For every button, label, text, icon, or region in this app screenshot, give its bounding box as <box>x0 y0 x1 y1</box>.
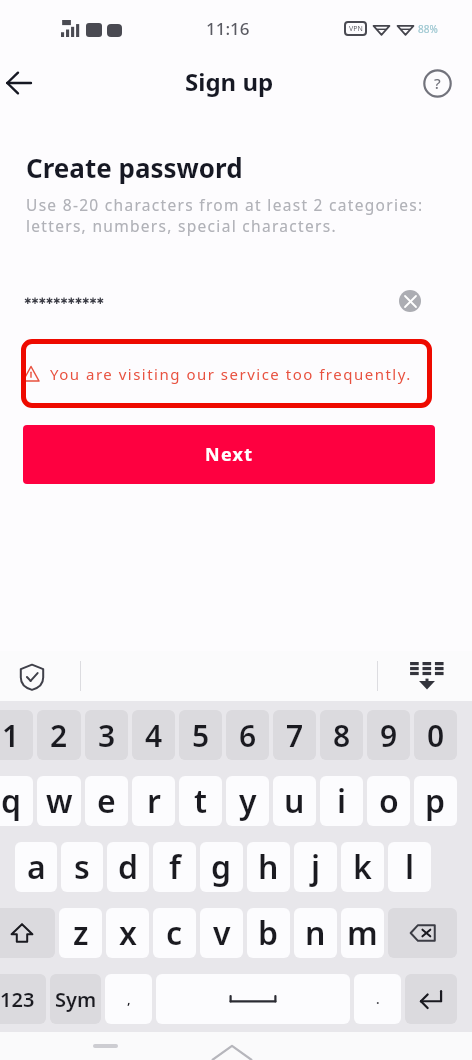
button[interactable]: Sym <box>50 974 101 1024</box>
staticText: o <box>379 779 399 823</box>
staticText: , <box>127 990 131 1008</box>
staticText: v <box>213 911 231 955</box>
staticText: y <box>239 779 257 823</box>
staticText: ✱✱✱✱✱✱✱✱✱✱✱ <box>24 296 399 306</box>
staticText: w <box>46 779 73 823</box>
staticText: VPN <box>349 24 363 34</box>
button[interactable]: p <box>414 776 457 826</box>
button[interactable]: 123 <box>0 974 46 1024</box>
button[interactable]: t <box>179 776 222 826</box>
staticText: Sign up <box>185 65 274 98</box>
button[interactable]: e <box>85 776 128 826</box>
button[interactable]: 1 <box>0 710 33 760</box>
staticText: p <box>425 779 446 823</box>
staticText: 8 <box>333 715 351 756</box>
button[interactable]: Hide keyboard <box>408 656 446 694</box>
button[interactable]: v <box>200 908 243 958</box>
button[interactable]: Backspace <box>388 908 457 958</box>
staticText: . <box>376 990 380 1008</box>
button[interactable]: q <box>0 776 33 826</box>
button[interactable]: Shift <box>0 908 55 958</box>
button[interactable]: m <box>341 908 384 958</box>
staticText: 2 <box>50 715 68 756</box>
button[interactable]: 8 <box>320 710 363 760</box>
button[interactable]: Space <box>156 974 350 1024</box>
staticText: Next <box>205 442 254 467</box>
staticText: z <box>73 911 89 955</box>
button[interactable]: c <box>153 908 196 958</box>
button[interactable]: j <box>294 842 337 892</box>
staticText: i <box>337 779 347 823</box>
button[interactable]: l <box>388 842 431 892</box>
staticText: 88% <box>418 22 438 36</box>
staticText: Create password <box>26 150 243 185</box>
button[interactable]: Help <box>415 61 459 105</box>
staticText: s <box>74 845 90 889</box>
staticText: f <box>169 845 181 889</box>
button[interactable]: Enter <box>405 974 457 1024</box>
staticText: t <box>194 779 207 823</box>
button[interactable]: . <box>354 974 401 1024</box>
button[interactable]: g <box>200 842 243 892</box>
button[interactable]: , <box>105 974 152 1024</box>
staticText: g <box>211 845 232 889</box>
button[interactable]: Back <box>0 61 41 105</box>
staticText: Use 8-20 characters from at least 2 cate… <box>26 194 424 237</box>
staticText: q <box>1 779 22 823</box>
staticText: n <box>305 911 326 955</box>
staticText: k <box>353 845 372 889</box>
button[interactable]: o <box>367 776 410 826</box>
button[interactable]: f <box>153 842 196 892</box>
button[interactable]: Secure input <box>13 658 50 695</box>
staticText: j <box>311 845 321 889</box>
button[interactable]: 2 <box>37 710 81 760</box>
button[interactable]: Next <box>23 425 435 484</box>
button[interactable]: 9 <box>367 710 410 760</box>
staticText: 7 <box>286 715 304 756</box>
button[interactable]: 6 <box>226 710 269 760</box>
button[interactable]: w <box>37 776 81 826</box>
staticText: 5 <box>192 715 210 756</box>
button[interactable]: a <box>15 842 57 892</box>
staticText: 4 <box>145 715 163 756</box>
button[interactable]: 7 <box>273 710 316 760</box>
staticText: ? <box>434 73 441 93</box>
staticText: 123 <box>0 986 35 1013</box>
staticText: d <box>118 845 139 889</box>
staticText: You are visiting our service too frequen… <box>50 364 412 384</box>
button[interactable]: h <box>247 842 290 892</box>
staticText: 3 <box>98 715 116 756</box>
staticText: b <box>258 911 279 955</box>
staticText: l <box>405 845 415 889</box>
staticText: x <box>119 911 137 955</box>
button[interactable]: k <box>341 842 384 892</box>
staticText: 9 <box>380 715 398 756</box>
button[interactable]: 0 <box>414 710 457 760</box>
staticText: 0 <box>427 715 445 756</box>
staticText: Sym <box>55 986 97 1013</box>
button[interactable]: y <box>226 776 269 826</box>
button[interactable]: 3 <box>85 710 128 760</box>
button[interactable]: s <box>61 842 103 892</box>
staticText: e <box>97 779 116 823</box>
button[interactable]: r <box>132 776 175 826</box>
staticText: c <box>166 911 183 955</box>
staticText: 11:16 <box>206 17 250 40</box>
staticText: m <box>347 911 378 955</box>
button[interactable]: n <box>294 908 337 958</box>
staticText: 6 <box>239 715 257 756</box>
button[interactable]: x <box>106 908 149 958</box>
button[interactable]: d <box>107 842 149 892</box>
button[interactable]: b <box>247 908 290 958</box>
button[interactable]: Clear text <box>399 290 421 312</box>
button[interactable]: z <box>59 908 102 958</box>
staticText: u <box>284 779 305 823</box>
staticText: a <box>27 845 46 889</box>
button[interactable]: 5 <box>179 710 222 760</box>
button[interactable]: i <box>320 776 363 826</box>
staticText: r <box>147 779 161 823</box>
button[interactable]: 4 <box>132 710 175 760</box>
button[interactable]: u <box>273 776 316 826</box>
staticText: h <box>258 845 279 889</box>
staticText: 1 <box>2 715 20 756</box>
